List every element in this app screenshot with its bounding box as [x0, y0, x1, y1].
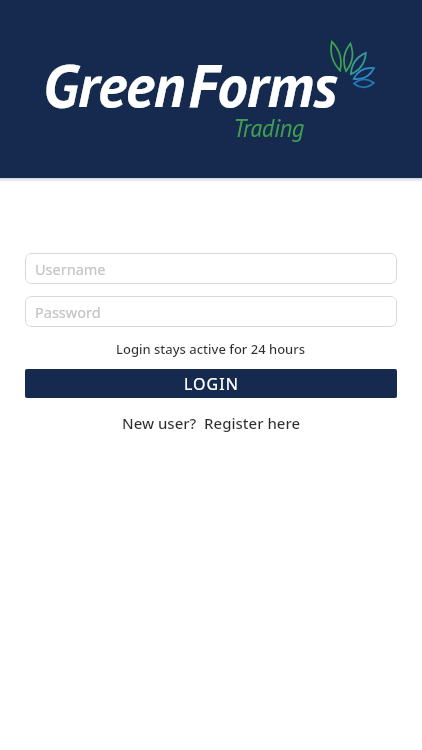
staticText: Password — [35, 302, 101, 322]
staticText: Username — [35, 259, 106, 279]
staticText: New user? Register here — [122, 413, 301, 433]
staticText: Login stays active for 24 hours — [116, 340, 306, 358]
button[interactable]: New user? Register here — [122, 413, 301, 433]
staticText: Green Forms — [43, 46, 337, 124]
button[interactable]: Username — [25, 253, 397, 284]
button[interactable]: LOGIN — [25, 369, 397, 398]
staticText: LOGIN — [184, 373, 239, 395]
staticText: Trading — [233, 112, 304, 144]
button[interactable]: Password — [25, 296, 397, 327]
